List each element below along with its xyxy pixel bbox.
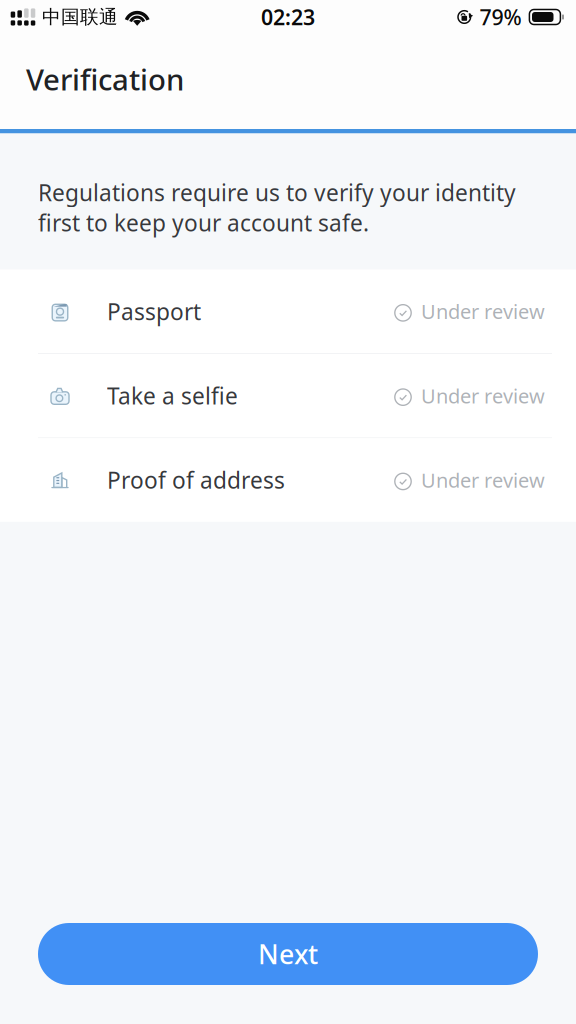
button[interactable]: Take a selfie bbox=[0, 354, 576, 437]
staticText: Under review bbox=[421, 382, 545, 409]
staticText: Take a selfie bbox=[107, 381, 238, 411]
staticText: Under review bbox=[421, 298, 545, 325]
staticText: 02:23 bbox=[261, 3, 315, 31]
staticText: Passport bbox=[107, 296, 201, 326]
staticText: Verification bbox=[26, 59, 184, 98]
staticText: 79% bbox=[479, 3, 521, 31]
button[interactable]: Next bbox=[38, 923, 538, 985]
staticText: Next bbox=[258, 936, 318, 972]
staticText: 中国联通 bbox=[42, 5, 118, 28]
staticText: Regulations require us to verify your id… bbox=[38, 177, 516, 238]
staticText: Proof of address bbox=[107, 465, 285, 495]
button[interactable]: Passport bbox=[0, 270, 576, 353]
button[interactable]: Proof of address bbox=[0, 438, 576, 522]
staticText: Under review bbox=[421, 467, 545, 493]
